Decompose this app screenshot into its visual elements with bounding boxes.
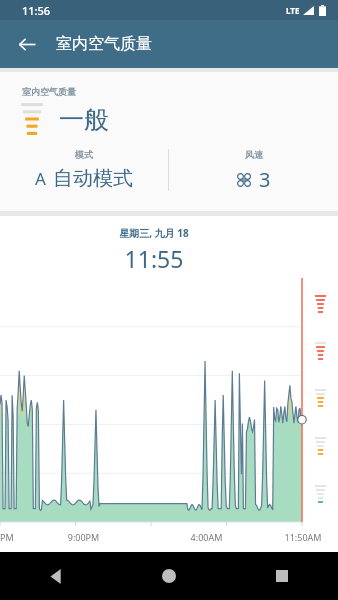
staticText: 4:00AM xyxy=(145,531,268,543)
staticText: 室内空气质量 xyxy=(56,34,152,54)
button[interactable]: 风速 xyxy=(169,149,338,201)
button[interactable]: 一般 xyxy=(0,101,338,137)
button[interactable]: Back xyxy=(8,25,46,63)
staticText: 自动模式 xyxy=(53,166,133,191)
button[interactable]: Recent apps xyxy=(226,552,338,600)
staticText: 3 xyxy=(259,166,271,193)
staticText: 11:56 xyxy=(22,3,51,18)
staticText: LTE xyxy=(286,5,300,16)
staticText: 模式 xyxy=(75,149,93,160)
button[interactable]: 模式 xyxy=(0,149,168,201)
staticText: A xyxy=(35,167,46,190)
staticText: 9:00PM xyxy=(22,531,145,543)
staticText: 一般 xyxy=(59,104,109,135)
button[interactable]: Home xyxy=(113,552,225,600)
staticText: 11:55 xyxy=(0,243,308,274)
staticText: 11:50AM xyxy=(268,531,338,543)
staticText: PM xyxy=(0,531,22,543)
staticText: 星期三, 九月 18 xyxy=(0,226,308,240)
staticText: 风速 xyxy=(245,149,263,160)
button[interactable]: Back xyxy=(0,552,112,600)
staticText: 室内空气质量 xyxy=(22,86,76,97)
